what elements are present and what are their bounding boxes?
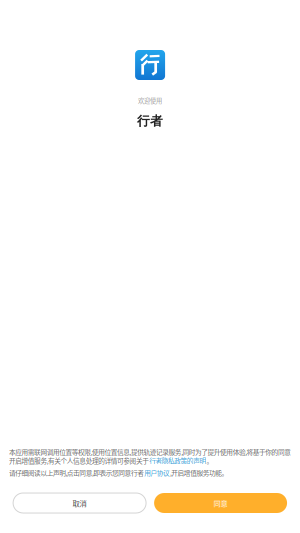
staticText: 用户协议 bbox=[144, 468, 170, 478]
staticText: 。 bbox=[206, 456, 213, 465]
staticText: 取消 bbox=[73, 498, 87, 508]
staticText: 欢迎使用 bbox=[138, 96, 162, 105]
staticText: 行者 bbox=[137, 113, 163, 129]
staticText: 行者隐私政策的声明 bbox=[149, 456, 206, 465]
button[interactable]: 同意 bbox=[154, 493, 287, 513]
staticText: 开启增值服务,有关个人信息处理的详情可参阅关于 bbox=[9, 456, 149, 465]
staticText: 请仔细阅读以上声明,点击同意,即表示您同意行者 bbox=[9, 468, 144, 478]
staticText: 同意 bbox=[214, 498, 228, 508]
staticText: 本应用需联网调用位置等权限,使用位置信息,提供轨迹记录服务,同时为了提升使用体验… bbox=[9, 447, 291, 457]
button[interactable]: 行者隐私政策的声明 bbox=[149, 456, 206, 465]
button[interactable]: 取消 bbox=[13, 493, 146, 513]
staticText: ,开启增值服务功能。 bbox=[170, 468, 228, 478]
button[interactable]: 用户协议 bbox=[144, 468, 170, 478]
